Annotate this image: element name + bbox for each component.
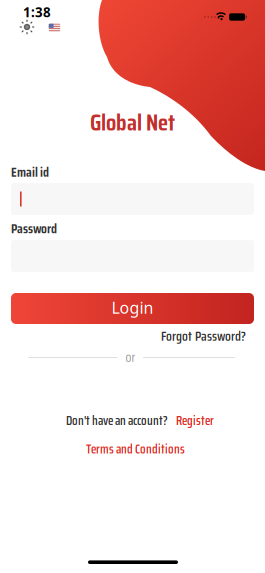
button[interactable]: Terms and Conditions xyxy=(86,439,185,459)
button[interactable]: Login xyxy=(11,293,254,324)
staticText: Register xyxy=(176,410,214,430)
staticText: Password xyxy=(11,218,57,239)
button[interactable]: Forgot Password? xyxy=(161,325,246,346)
staticText: Email id xyxy=(11,161,49,182)
button[interactable]: Toggle dark mode xyxy=(19,19,35,35)
staticText: or xyxy=(125,346,135,367)
button[interactable]: Register xyxy=(176,410,214,430)
staticText: Terms and Conditions xyxy=(86,439,185,459)
button[interactable]: Change language xyxy=(49,24,60,31)
staticText: Don't have an account? xyxy=(66,410,168,430)
staticText: Global Net xyxy=(90,104,175,141)
staticText: 1:38 xyxy=(23,3,51,21)
staticText: Login xyxy=(111,297,153,318)
staticText: Forgot Password? xyxy=(161,325,246,346)
button[interactable]: Email id xyxy=(11,183,254,215)
